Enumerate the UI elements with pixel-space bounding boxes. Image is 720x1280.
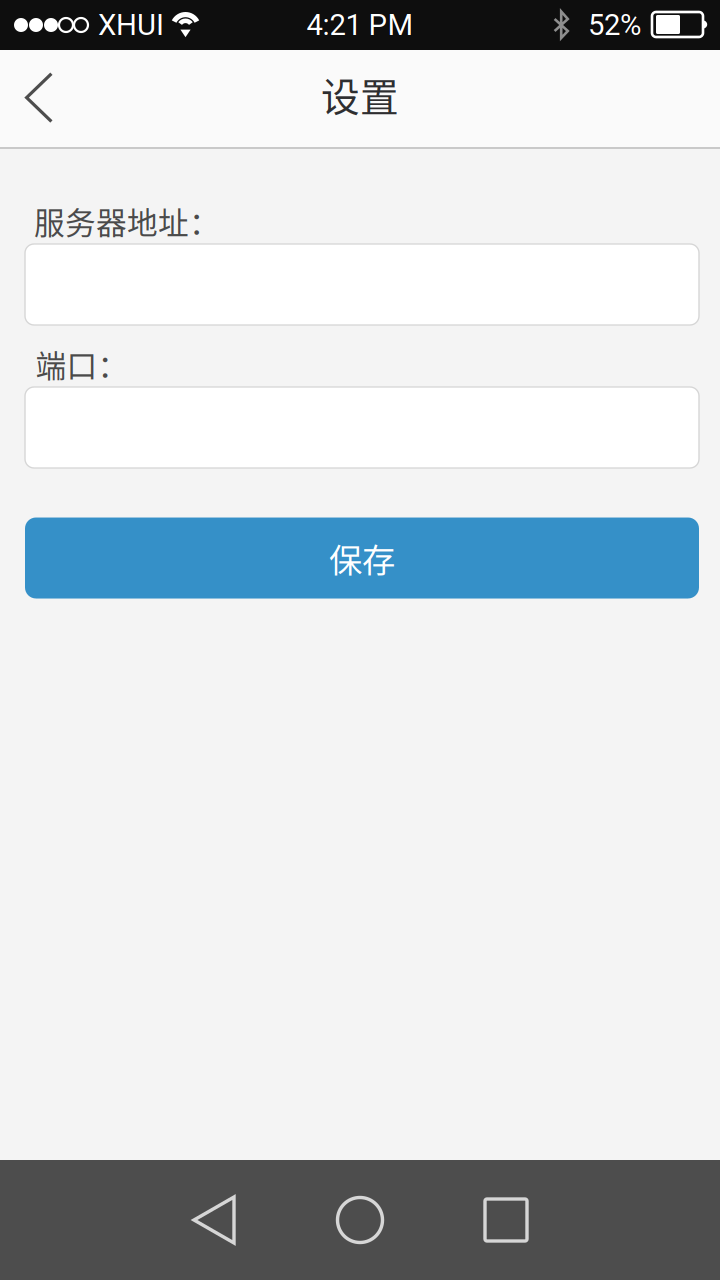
- staticText: 保存: [329, 534, 395, 582]
- staticText: 服务器地址：: [34, 199, 220, 243]
- button[interactable]: 保存: [25, 517, 699, 598]
- button[interactable]: Server address: [25, 244, 699, 325]
- button[interactable]: Port: [25, 387, 699, 468]
- button[interactable]: Back: [141, 1160, 287, 1280]
- button[interactable]: Home: [287, 1160, 433, 1280]
- staticText: XHUI: [98, 8, 164, 42]
- staticText: 52%: [588, 8, 641, 42]
- button[interactable]: Back: [0, 50, 78, 146]
- staticText: 设置: [321, 66, 399, 122]
- staticText: 4:21 PM: [306, 8, 413, 42]
- button[interactable]: Recent apps: [433, 1160, 579, 1280]
- staticText: 端口：: [35, 342, 128, 386]
